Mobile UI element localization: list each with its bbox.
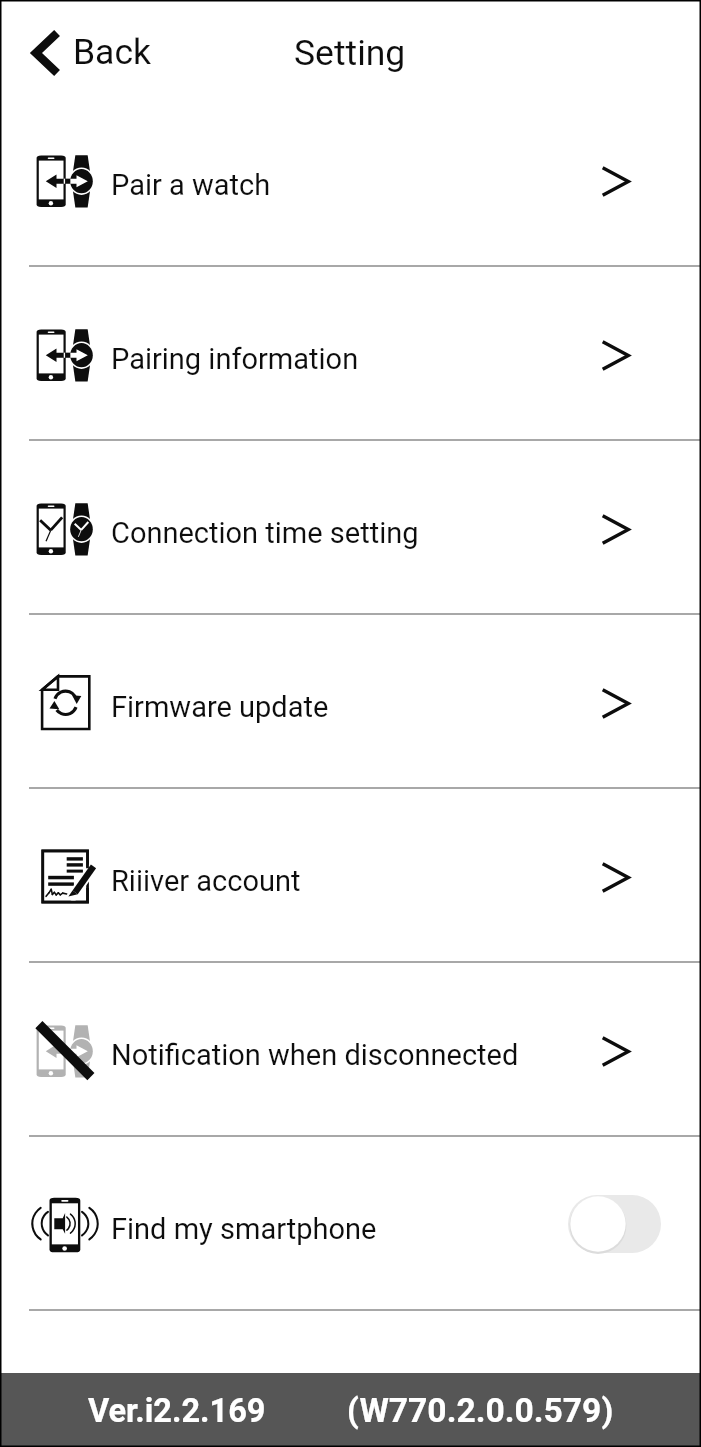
other: Open Connection time setting [601,514,630,545]
other: Open Notification when disconnected [601,1036,630,1067]
staticText: Setting [294,32,406,74]
staticText: Firmware update [111,690,329,724]
button[interactable]: Riiiver account [0,789,701,963]
staticText: Pairing information [111,342,359,376]
button[interactable]: Connection time setting [0,441,701,615]
staticText: Notification when disconnected [111,1038,519,1072]
other: Open Pair a watch [601,166,630,197]
staticText: Pair a watch [111,168,271,202]
button[interactable]: Back [33,24,152,70]
staticText: Find my smartphone [111,1212,377,1246]
button[interactable]: Pair a watch [0,93,701,267]
button[interactable]: Pairing information [0,267,701,441]
button[interactable]: Notification when disconnected [0,963,701,1137]
button[interactable]: Firmware update [0,615,701,789]
other: Open Pairing information [601,340,630,371]
staticText: Back [73,31,152,73]
staticText: Ver.i2.2.169 [88,1392,266,1430]
staticText: (W770.2.0.0.579) [347,1391,614,1430]
staticText: Connection time setting [111,516,419,550]
staticText: Riiiver account [111,864,301,898]
other: Open Firmware update [601,688,630,719]
other: Open Riiiver account [601,862,630,893]
button[interactable]: Find my smartphone [0,1137,701,1311]
button[interactable]: Find my smartphone [568,1195,661,1253]
